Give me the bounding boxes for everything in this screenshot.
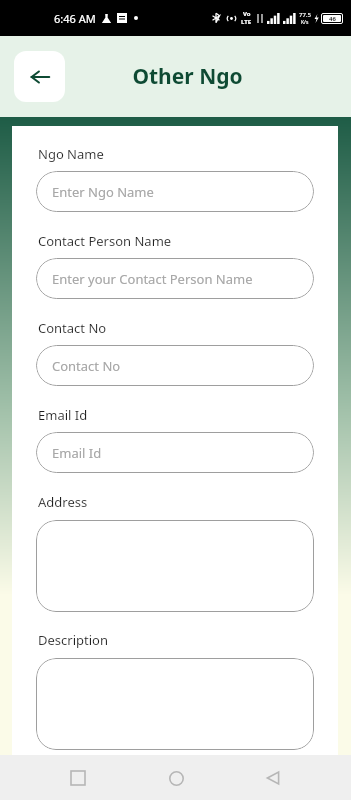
staticText: 77.5	[299, 11, 311, 19]
button[interactable]: Back	[14, 51, 65, 102]
staticText: Contact Person Name	[38, 232, 172, 250]
button[interactable]: Home	[156, 758, 196, 798]
staticText: Address	[38, 493, 88, 511]
button[interactable]	[36, 520, 314, 612]
button[interactable]: Enter Ngo Name	[36, 171, 314, 212]
button[interactable]: Email Id	[36, 432, 314, 473]
staticText: Enter your Contact Person Name	[52, 270, 253, 288]
staticText: K/s	[301, 19, 309, 26]
staticText: Contact No	[38, 319, 107, 337]
staticText: Other Ngo	[132, 62, 243, 91]
staticText: Ngo Name	[38, 145, 104, 163]
button[interactable]: Enter your Contact Person Name	[36, 258, 314, 299]
staticText: 46	[329, 15, 336, 22]
staticText: Email Id	[38, 406, 88, 424]
staticText: LTE	[241, 18, 252, 26]
staticText: Vo	[243, 10, 251, 18]
button[interactable]: Back	[253, 758, 293, 798]
staticText: Enter Ngo Name	[52, 183, 154, 201]
button[interactable]: Recents	[58, 758, 98, 798]
staticText: Contact No	[52, 357, 121, 375]
staticText: 6:46 AM	[54, 11, 96, 26]
button[interactable]	[36, 658, 314, 750]
staticText: Email Id	[52, 444, 102, 462]
staticText: Description	[38, 631, 108, 649]
button[interactable]: Contact No	[36, 345, 314, 386]
